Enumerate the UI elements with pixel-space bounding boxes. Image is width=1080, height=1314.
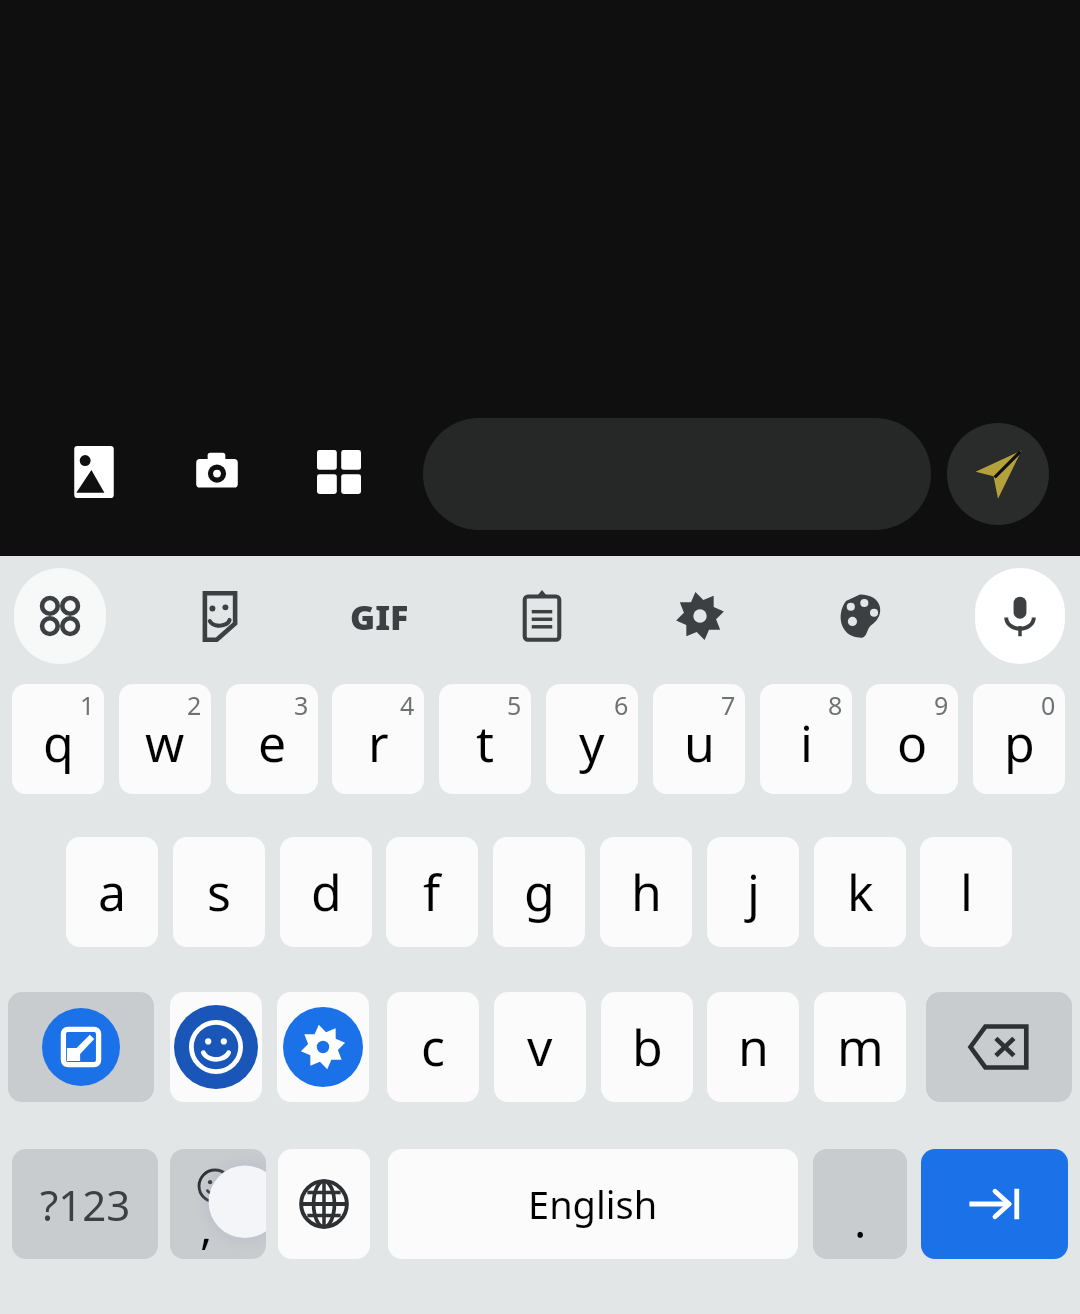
button[interactable]: Stickers (178, 574, 262, 658)
button[interactable]: w (119, 684, 211, 794)
staticText: p (1004, 709, 1035, 777)
button[interactable]: r (332, 684, 424, 794)
staticText: k (847, 858, 874, 926)
button[interactable]: l (920, 837, 1012, 947)
staticText: 3 (294, 688, 309, 722)
button[interactable]: m (814, 992, 906, 1102)
button[interactable]: Toolbar menu (14, 568, 106, 664)
button[interactable]: q (12, 684, 104, 794)
staticText: o (897, 709, 928, 777)
staticText: n (738, 1013, 769, 1081)
staticText: r (368, 709, 389, 777)
button[interactable]: ?123 (12, 1149, 158, 1259)
staticText: f (423, 858, 441, 926)
staticText: 0 (1041, 688, 1056, 722)
button[interactable]: u (653, 684, 745, 794)
staticText: 1 (80, 688, 95, 722)
staticText: j (747, 858, 760, 926)
button[interactable]: i (760, 684, 852, 794)
staticText: . (854, 1189, 867, 1252)
button[interactable]: f (386, 837, 478, 947)
staticText: GIF (350, 594, 409, 640)
staticText: y (579, 709, 605, 777)
staticText: m (837, 1013, 884, 1081)
button[interactable]: Camera (177, 432, 257, 512)
staticText: English (528, 1178, 658, 1230)
staticText: a (98, 858, 127, 926)
staticText: s (207, 858, 231, 926)
staticText: , (200, 1195, 213, 1258)
staticText: w (145, 709, 185, 777)
staticText: c (421, 1013, 445, 1081)
staticText: 9 (934, 688, 949, 722)
button[interactable]: e (226, 684, 318, 794)
staticText: q (43, 709, 74, 777)
button[interactable]: Shift (8, 992, 154, 1102)
staticText: 5 (507, 688, 522, 722)
button[interactable]: d (280, 837, 372, 947)
button[interactable]: n (707, 992, 799, 1102)
button[interactable]: Keyboard settings (277, 992, 369, 1102)
button[interactable]: Comma (170, 1149, 266, 1259)
button[interactable] (423, 418, 931, 530)
button[interactable]: Clipboard (500, 574, 584, 658)
button[interactable]: Next field (921, 1149, 1068, 1259)
button[interactable]: c (387, 992, 479, 1102)
button[interactable]: p (973, 684, 1065, 794)
staticText: t (476, 709, 495, 777)
button[interactable]: GIF (338, 576, 420, 658)
staticText: 6 (614, 688, 629, 722)
button[interactable]: Voice input (975, 568, 1065, 664)
button[interactable]: y (546, 684, 638, 794)
button[interactable]: English (388, 1149, 798, 1259)
staticText: 7 (721, 688, 736, 722)
button[interactable]: Settings (658, 574, 742, 658)
staticText: d (311, 858, 342, 926)
staticText: u (684, 709, 715, 777)
staticText: i (800, 709, 813, 777)
staticText: l (960, 858, 973, 926)
staticText: ?123 (40, 1176, 131, 1233)
button[interactable]: t (439, 684, 531, 794)
button[interactable]: o (866, 684, 958, 794)
button[interactable]: a (66, 837, 158, 947)
button[interactable]: More apps (299, 432, 379, 512)
button[interactable]: Backspace (926, 992, 1072, 1102)
staticText: 2 (187, 688, 202, 722)
staticText: b (632, 1013, 663, 1081)
button[interactable]: Change language (278, 1149, 370, 1259)
staticText: 8 (828, 688, 843, 722)
button[interactable]: Gallery (54, 432, 134, 512)
button[interactable]: v (494, 992, 586, 1102)
button[interactable]: Period (813, 1149, 907, 1259)
staticText: v (527, 1013, 553, 1081)
staticText: h (631, 858, 662, 926)
button[interactable]: g (493, 837, 585, 947)
button[interactable]: Send (947, 423, 1049, 525)
button[interactable]: b (601, 992, 693, 1102)
button[interactable]: k (814, 837, 906, 947)
staticText: g (524, 858, 555, 926)
button[interactable]: Emoji (170, 992, 262, 1102)
staticText: 4 (400, 688, 415, 722)
staticText: e (258, 709, 287, 777)
button[interactable]: h (600, 837, 692, 947)
button[interactable]: Theme (818, 574, 902, 658)
button[interactable]: s (173, 837, 265, 947)
button[interactable]: j (707, 837, 799, 947)
